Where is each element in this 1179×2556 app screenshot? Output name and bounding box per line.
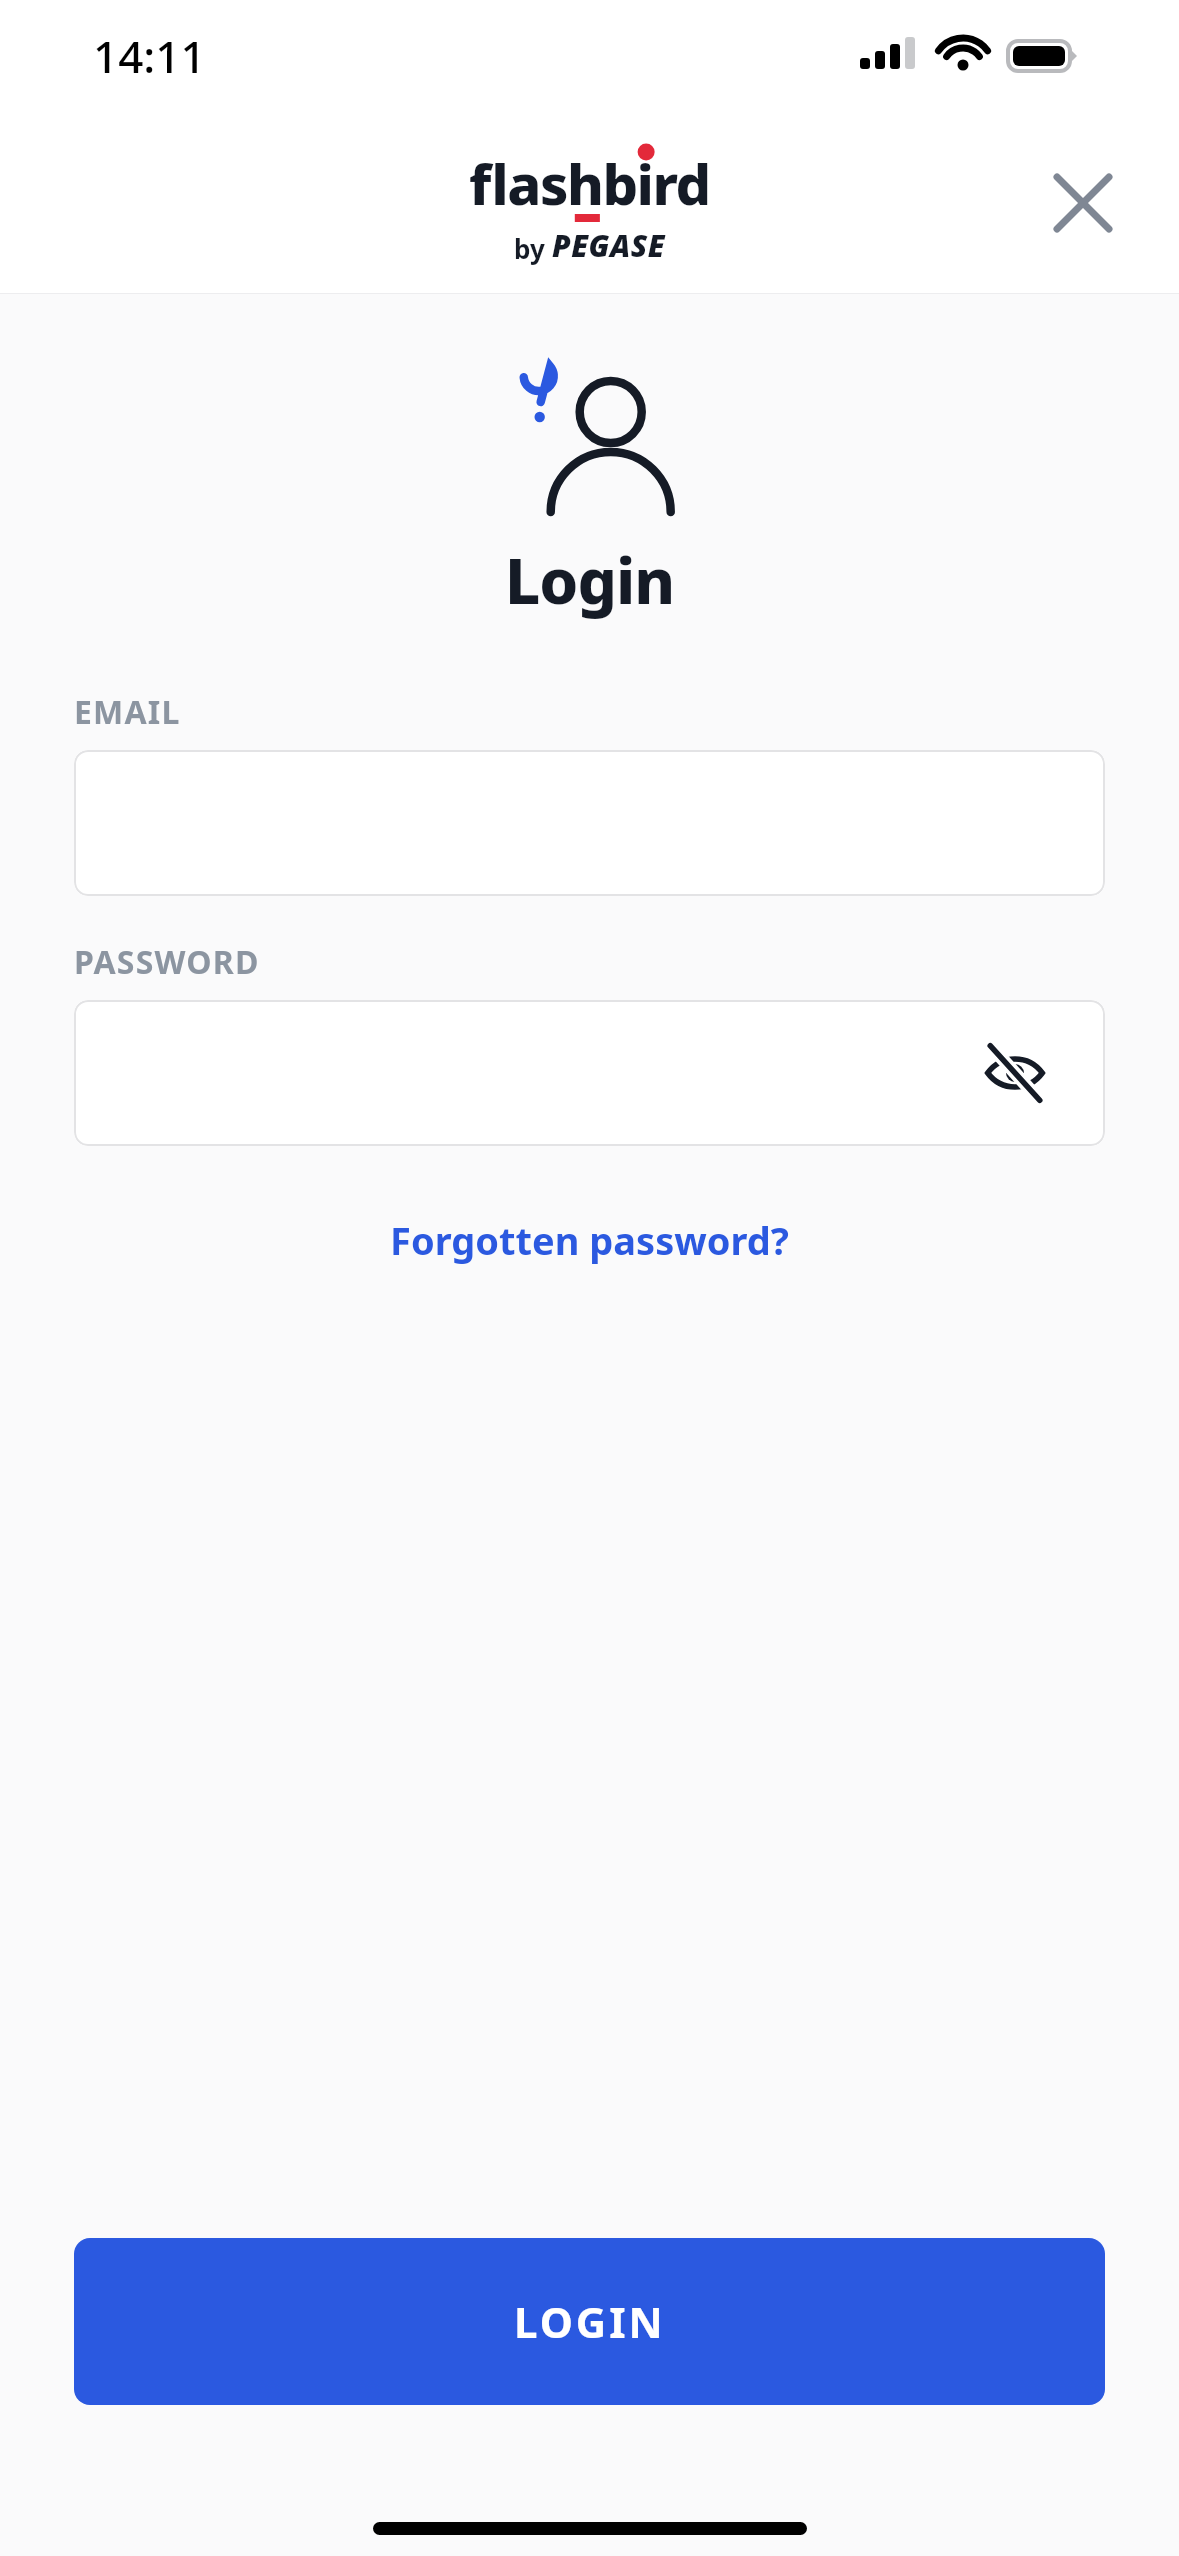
- staticText: Forgotten password?: [390, 1214, 789, 1266]
- staticText: flashbird: [469, 145, 710, 221]
- button[interactable]: Show password: [969, 1027, 1061, 1119]
- staticText: EMAIL: [74, 690, 181, 734]
- button[interactable]: Forgotten password?: [378, 1208, 801, 1272]
- staticText: PEGASE: [552, 225, 666, 266]
- staticText: 14:11: [93, 26, 206, 86]
- staticText: Login: [0, 538, 1179, 622]
- staticText: by: [514, 231, 552, 266]
- button[interactable]: LOGIN: [74, 2238, 1105, 2405]
- staticText: PASSWORD: [74, 940, 260, 984]
- button[interactable]: Show password: [74, 1000, 1105, 1146]
- staticText: LOGIN: [514, 2293, 666, 2350]
- button[interactable]: [74, 750, 1105, 896]
- button[interactable]: Close: [1035, 155, 1131, 251]
